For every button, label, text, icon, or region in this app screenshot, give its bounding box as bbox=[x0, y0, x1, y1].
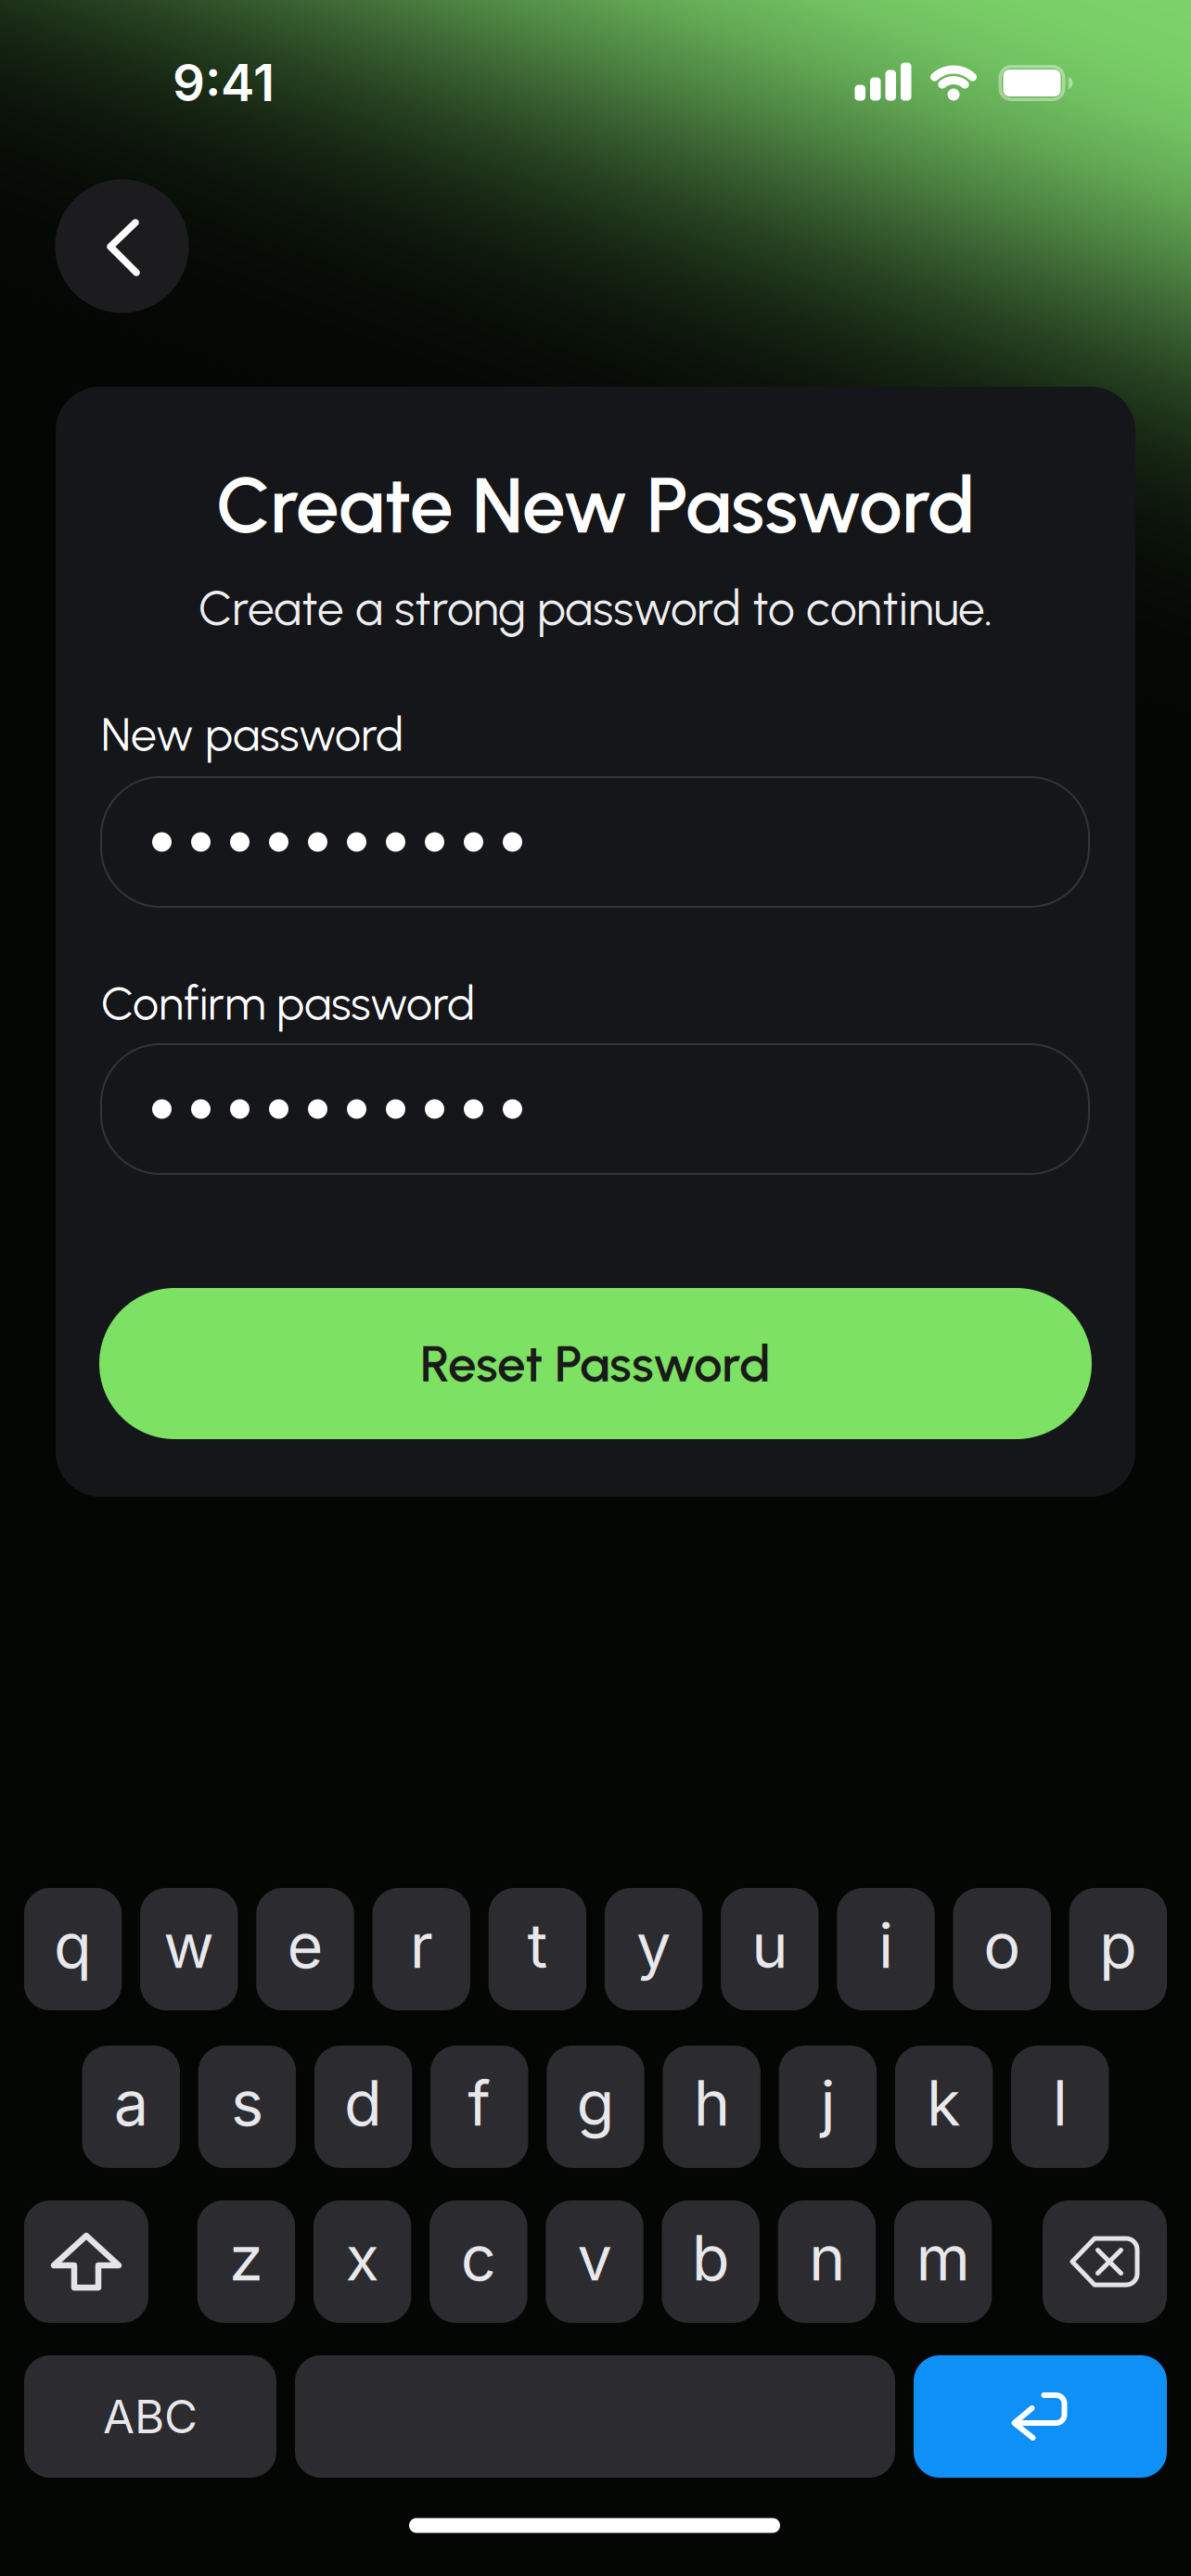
button[interactable]: Delete bbox=[1043, 2200, 1167, 2323]
button[interactable]: Password field bbox=[100, 1043, 1090, 1175]
button[interactable]: t bbox=[489, 1888, 586, 2010]
staticText: h bbox=[694, 2066, 730, 2141]
button[interactable]: l bbox=[1011, 2046, 1109, 2168]
staticText: e bbox=[287, 1908, 323, 1983]
staticText: Create a strong password to continue. bbox=[198, 580, 992, 637]
button[interactable]: Return bbox=[914, 2355, 1167, 2478]
button[interactable]: g bbox=[547, 2046, 644, 2168]
button[interactable]: Shift bbox=[24, 2200, 148, 2323]
staticText: u bbox=[752, 1908, 788, 1983]
button[interactable]: j bbox=[779, 2046, 877, 2168]
button[interactable]: c bbox=[430, 2200, 527, 2323]
button[interactable]: Back bbox=[55, 179, 189, 313]
staticText: p bbox=[1099, 1908, 1137, 1983]
button[interactable]: Reset Password bbox=[99, 1288, 1092, 1439]
staticText: y bbox=[636, 1908, 671, 1983]
button[interactable]: a bbox=[82, 2046, 180, 2168]
staticText: Confirm password bbox=[101, 976, 475, 1031]
staticText: d bbox=[344, 2066, 382, 2141]
button[interactable]: u bbox=[721, 1888, 819, 2010]
button[interactable]: Password field bbox=[100, 776, 1090, 908]
staticText: l bbox=[1053, 2066, 1067, 2141]
staticText: w bbox=[164, 1908, 215, 1983]
button[interactable]: q bbox=[24, 1888, 122, 2010]
staticText: r bbox=[410, 1908, 433, 1983]
staticText: New password bbox=[101, 707, 403, 762]
staticText: Create New Password bbox=[216, 459, 975, 552]
button[interactable]: f bbox=[430, 2046, 528, 2168]
button[interactable]: k bbox=[895, 2046, 993, 2168]
button[interactable]: b bbox=[662, 2200, 760, 2323]
staticText: t bbox=[527, 1908, 548, 1983]
staticText: ABC bbox=[103, 2389, 198, 2444]
button[interactable]: e bbox=[256, 1888, 354, 2010]
staticText: i bbox=[878, 1908, 893, 1983]
button[interactable]: i bbox=[837, 1888, 935, 2010]
staticText: o bbox=[983, 1908, 1021, 1983]
staticText: Reset Password bbox=[420, 1333, 771, 1394]
staticText: v bbox=[577, 2221, 612, 2295]
button[interactable]: m bbox=[894, 2200, 992, 2323]
button[interactable]: z bbox=[197, 2200, 295, 2323]
staticText: s bbox=[231, 2066, 263, 2141]
button[interactable]: ABC bbox=[24, 2355, 276, 2478]
button[interactable]: w bbox=[140, 1888, 238, 2010]
staticText: n bbox=[809, 2221, 845, 2295]
staticText: 9:41 bbox=[173, 52, 275, 113]
button[interactable]: d bbox=[314, 2046, 412, 2168]
button[interactable]: Space bbox=[295, 2355, 895, 2478]
button[interactable]: v bbox=[546, 2200, 643, 2323]
staticText: c bbox=[461, 2221, 496, 2295]
staticText: f bbox=[468, 2066, 491, 2141]
staticText: q bbox=[54, 1908, 92, 1983]
button[interactable]: r bbox=[372, 1888, 470, 2010]
button[interactable]: o bbox=[953, 1888, 1051, 2010]
button[interactable]: h bbox=[663, 2046, 761, 2168]
staticText: k bbox=[927, 2066, 961, 2141]
button[interactable]: x bbox=[313, 2200, 411, 2323]
button[interactable]: n bbox=[778, 2200, 876, 2323]
staticText: z bbox=[229, 2221, 263, 2295]
button[interactable]: s bbox=[198, 2046, 296, 2168]
staticText: m bbox=[916, 2221, 970, 2295]
button[interactable]: y bbox=[605, 1888, 702, 2010]
staticText: x bbox=[346, 2221, 379, 2295]
staticText: g bbox=[576, 2066, 615, 2141]
button[interactable]: p bbox=[1069, 1888, 1167, 2010]
staticText: a bbox=[114, 2066, 148, 2141]
staticText: b bbox=[692, 2221, 730, 2295]
staticText: j bbox=[820, 2066, 835, 2141]
